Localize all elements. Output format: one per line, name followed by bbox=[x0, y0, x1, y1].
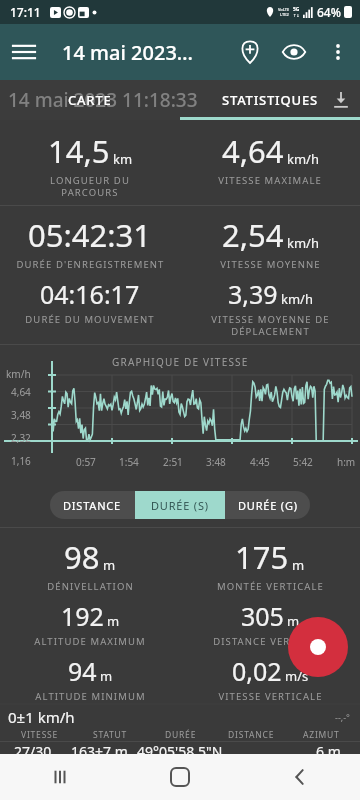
staticText: 49°05'58.5"N, 2°31'32.4"E bbox=[137, 742, 301, 754]
staticText: GRAPHIQUE DE VITESSE bbox=[112, 355, 249, 369]
staticText: 5:42 bbox=[293, 455, 313, 469]
staticText: 0:57 bbox=[76, 455, 96, 469]
staticText: 5G bbox=[293, 6, 300, 13]
staticText: m/s bbox=[285, 667, 309, 685]
staticText: 14 mai 2023 11:18:33 bbox=[8, 87, 198, 113]
staticText: 1,16 bbox=[11, 454, 31, 468]
button[interactable]: Recent apps bbox=[0, 754, 120, 800]
staticText: 0±1 km/h bbox=[8, 707, 75, 727]
staticText: 05:42:31 bbox=[28, 214, 152, 256]
staticText: DISTANCE bbox=[63, 498, 122, 513]
staticText: 3,48 bbox=[11, 408, 31, 422]
staticText: DISTANCE bbox=[228, 729, 275, 741]
staticText: DURÉE (S) bbox=[151, 498, 209, 513]
staticText: 2:51 bbox=[163, 455, 183, 469]
staticText: 17:11 bbox=[10, 4, 41, 20]
button[interactable]: 4,64 bbox=[180, 130, 360, 187]
staticText: 3:48 bbox=[206, 455, 226, 469]
staticText: STATUT bbox=[93, 729, 128, 741]
staticText: 27/30 bbox=[14, 742, 52, 754]
staticText: h:m bbox=[337, 455, 356, 469]
button[interactable]: 98 bbox=[0, 536, 180, 593]
staticText: 2,32 bbox=[11, 431, 31, 445]
staticText: VITESSE VERTICALE bbox=[218, 690, 323, 703]
staticText: 64% bbox=[317, 4, 341, 20]
staticText: DURÉE (G) bbox=[238, 498, 298, 513]
button[interactable]: Back bbox=[240, 754, 360, 800]
button[interactable]: STATISTIQUES bbox=[180, 80, 360, 120]
button[interactable]: 14,5 bbox=[0, 130, 180, 199]
staticText: DISTANCE VERTICALE bbox=[213, 635, 328, 648]
button[interactable]: Home bbox=[120, 754, 240, 800]
staticText: 4,64 bbox=[222, 130, 284, 172]
staticText: km/h bbox=[287, 150, 319, 168]
staticText: AZIMUT bbox=[303, 729, 340, 741]
button[interactable]: 305 bbox=[180, 599, 360, 648]
staticText: VITESSE bbox=[21, 729, 59, 741]
staticText: DÉNIVELLATION bbox=[47, 580, 134, 593]
staticText: STATISTIQUES bbox=[222, 91, 318, 109]
button[interactable]: DISTANCE bbox=[50, 491, 135, 519]
staticText: km/h bbox=[6, 367, 31, 381]
button[interactable]: DURÉE (S) bbox=[135, 491, 225, 519]
staticText: 6 m bbox=[316, 742, 341, 754]
staticText: m bbox=[292, 556, 305, 574]
staticText: MONTÉE VERTICALE bbox=[217, 580, 324, 593]
button[interactable]: Add waypoint bbox=[228, 30, 272, 74]
staticText: m bbox=[107, 612, 120, 630]
staticText: km bbox=[113, 150, 133, 168]
staticText: DURÉE bbox=[165, 729, 197, 741]
staticText: m bbox=[287, 612, 300, 630]
staticText: LONGUEUR DU PARCOURS bbox=[50, 174, 130, 199]
button[interactable]: Record bbox=[288, 617, 348, 677]
staticText: 1:54 bbox=[119, 455, 139, 469]
staticText: 163±7 m bbox=[71, 742, 128, 754]
staticText: DURÉE DU MOUVEMENT bbox=[25, 313, 155, 326]
button[interactable]: More options bbox=[316, 30, 360, 74]
staticText: DURÉE D'ENREGISTREMENT bbox=[16, 258, 165, 271]
staticText: 14 mai 2023… bbox=[62, 39, 194, 66]
staticText: LTE2 bbox=[280, 12, 289, 17]
staticText: ALTITUDE MAXIMUM bbox=[34, 635, 146, 648]
staticText: 3,39 bbox=[228, 277, 278, 311]
button[interactable]: 2,54 bbox=[180, 214, 360, 271]
staticText: --,-° bbox=[335, 711, 350, 723]
staticText: VITESSE MAXIMALE bbox=[218, 174, 322, 187]
staticText: ↑↓ bbox=[293, 13, 300, 18]
button[interactable]: 05:42:31 bbox=[0, 214, 180, 271]
staticText: km/h bbox=[287, 234, 319, 252]
staticText: 175 bbox=[235, 536, 289, 578]
button[interactable]: 175 bbox=[180, 536, 360, 593]
button[interactable]: 0,02 bbox=[180, 654, 360, 703]
staticText: 2,54 bbox=[222, 214, 284, 256]
button[interactable]: Download bbox=[328, 87, 354, 113]
staticText: ALTITUDE MINIMUM bbox=[35, 690, 146, 703]
button[interactable]: 3,39 bbox=[180, 277, 360, 338]
staticText: VoLTE bbox=[278, 7, 290, 12]
staticText: km/h bbox=[281, 290, 313, 308]
staticText: VITESSE MOYENNE bbox=[220, 258, 321, 271]
button[interactable]: 192 bbox=[0, 599, 180, 648]
staticText: 192 bbox=[61, 599, 104, 633]
button[interactable]: Menu bbox=[0, 28, 48, 76]
button[interactable]: Show bbox=[272, 30, 316, 74]
staticText: m bbox=[103, 556, 116, 574]
button[interactable]: 94 bbox=[0, 654, 180, 703]
button[interactable]: CARTE bbox=[0, 80, 180, 120]
staticText: 305 bbox=[241, 599, 284, 633]
staticText: 0,02 bbox=[232, 654, 282, 688]
staticText: VITESSE MOYENNE DE DÉPLACEMENT bbox=[211, 313, 330, 338]
staticText: 94 bbox=[68, 654, 97, 688]
staticText: 4,64 bbox=[11, 385, 31, 399]
staticText: 4:45 bbox=[250, 455, 270, 469]
button[interactable]: 04:16:17 bbox=[0, 277, 180, 326]
staticText: 98 bbox=[64, 536, 100, 578]
staticText: CARTE bbox=[68, 91, 112, 109]
button[interactable]: DURÉE (G) bbox=[225, 491, 310, 519]
staticText: 04:16:17 bbox=[40, 277, 140, 311]
staticText: 14,5 bbox=[48, 130, 110, 172]
staticText: m bbox=[100, 667, 113, 685]
